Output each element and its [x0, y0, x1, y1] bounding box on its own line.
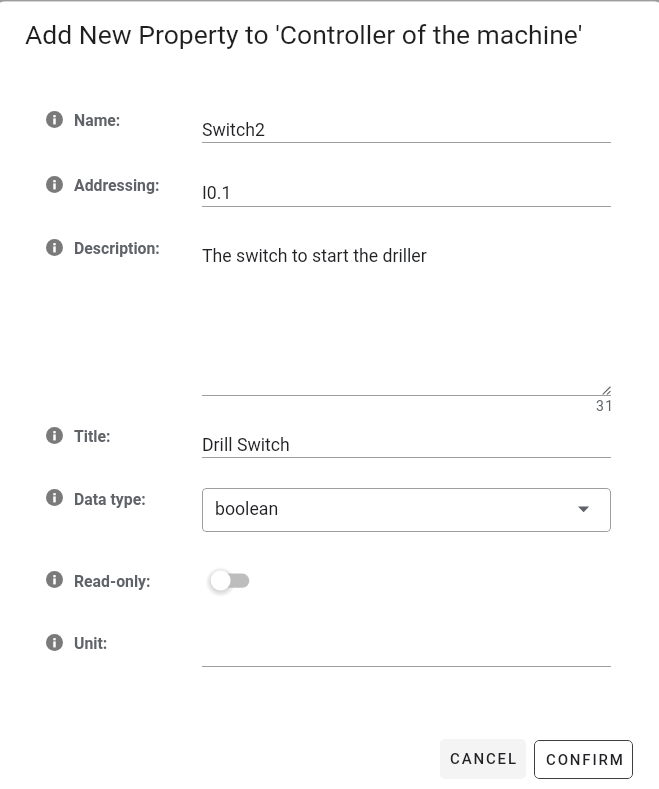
- staticText: Read-only:: [74, 572, 151, 591]
- staticText: Unit:: [74, 634, 108, 653]
- button[interactable]: boolean: [202, 488, 611, 532]
- staticText: Data type:: [74, 490, 146, 509]
- staticText: Name:: [74, 111, 121, 130]
- other: Info: [46, 176, 63, 193]
- staticText: I0.1: [202, 183, 232, 204]
- staticText: Add New Property to 'Controller of the m…: [25, 19, 583, 50]
- staticText: Description:: [74, 239, 160, 258]
- staticText: CANCEL: [450, 750, 518, 768]
- staticText: Addressing:: [74, 176, 160, 195]
- staticText: Drill Switch: [202, 435, 290, 456]
- other: Info: [46, 489, 63, 506]
- staticText: 31: [596, 398, 615, 414]
- button[interactable]: CONFIRM: [534, 740, 633, 779]
- staticText: Title:: [74, 427, 111, 446]
- staticText: Switch2: [202, 120, 265, 141]
- staticText: CONFIRM: [546, 751, 625, 769]
- button[interactable]: CANCEL: [440, 739, 526, 779]
- other: Info: [46, 111, 63, 128]
- other: Info: [46, 634, 63, 651]
- other: Info: [46, 427, 63, 444]
- staticText: The switch to start the driller: [202, 246, 427, 267]
- other: Info: [46, 571, 63, 588]
- staticText: boolean: [215, 499, 279, 520]
- other: Info: [46, 239, 63, 256]
- button[interactable]: Read-only toggle: [204, 564, 258, 598]
